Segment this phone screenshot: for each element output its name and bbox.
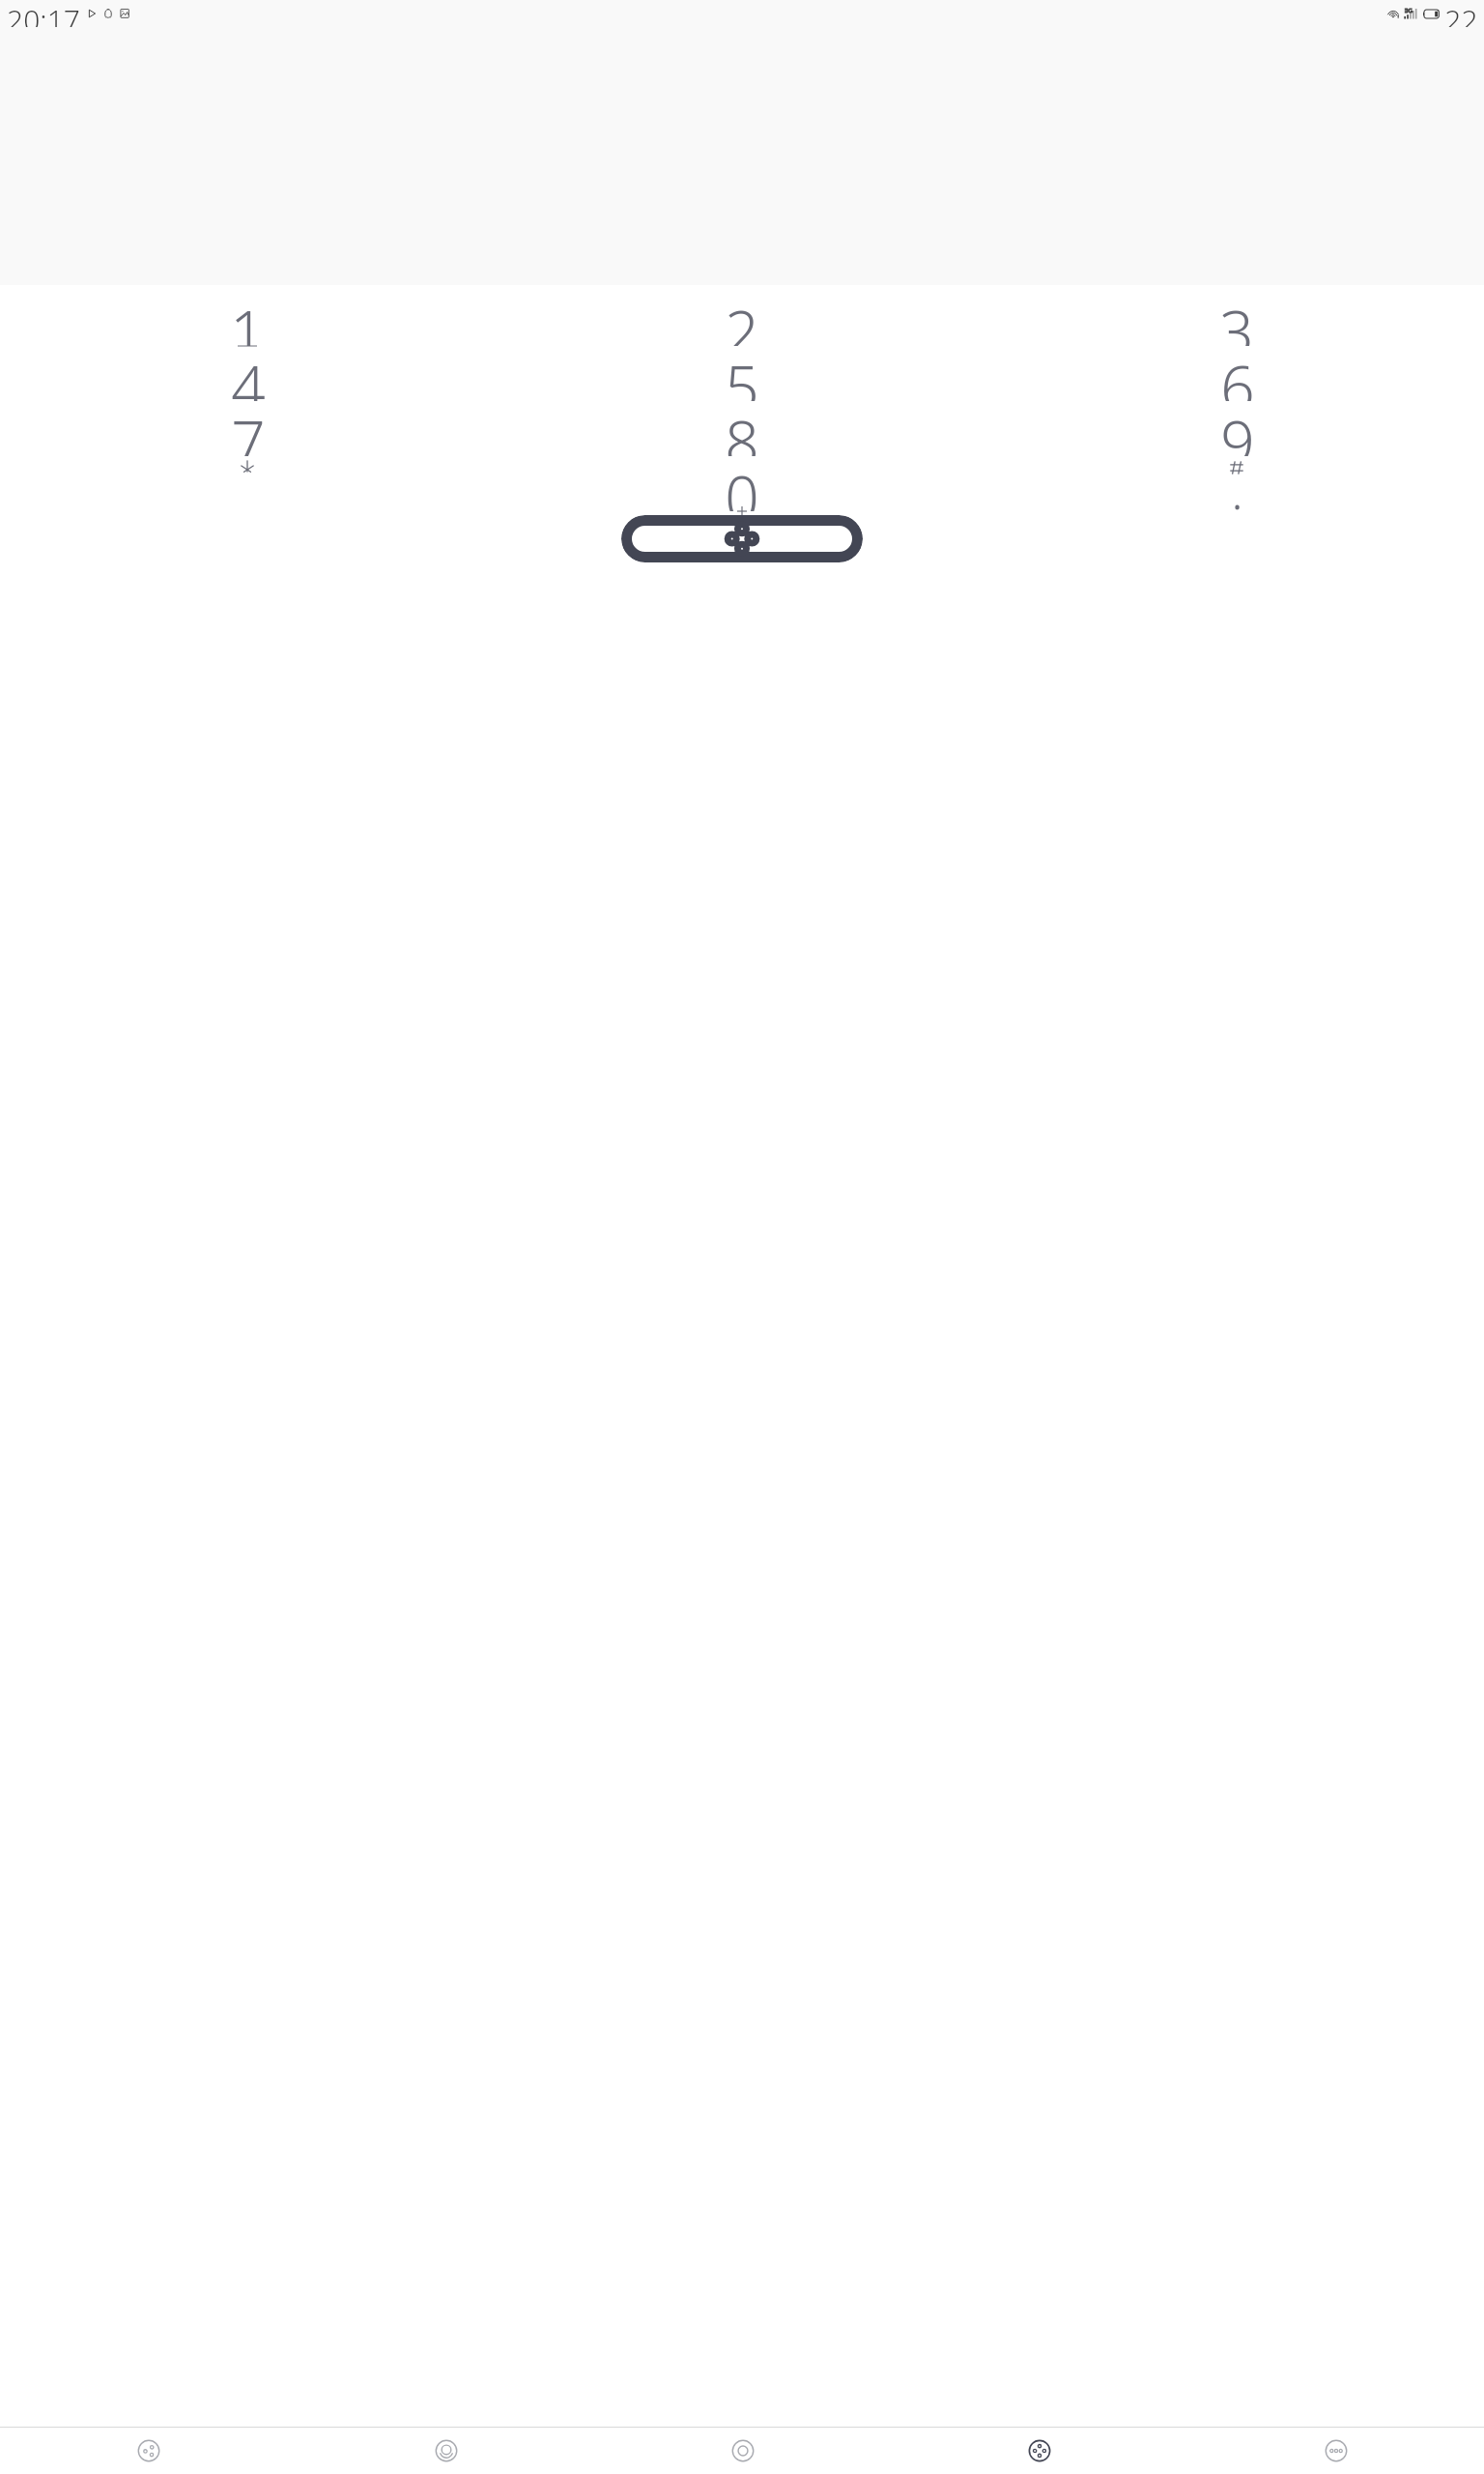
staticText: 3 — [1219, 291, 1254, 346]
button[interactable]: 6 — [989, 347, 1484, 402]
button[interactable]: Recent calls — [0, 2428, 298, 2474]
staticText: 7 — [231, 401, 266, 456]
button[interactable]: 4 — [0, 347, 495, 402]
staticText: 4 — [231, 346, 266, 401]
button[interactable]: 3 — [989, 292, 1484, 347]
button[interactable]: Dialpad — [891, 2428, 1187, 2474]
button[interactable]: Contacts — [298, 2428, 594, 2474]
staticText: 0 — [725, 456, 759, 511]
button[interactable]: Favourites — [594, 2428, 891, 2474]
staticText: ; — [1231, 480, 1243, 511]
staticText: 2 — [725, 291, 759, 346]
button[interactable]: 1 — [0, 292, 495, 347]
button[interactable]: 5 — [495, 347, 989, 402]
staticText: 5 — [725, 346, 759, 401]
staticText: 6 — [1220, 346, 1255, 401]
button[interactable]: More — [1187, 2428, 1484, 2474]
staticText: 20:17 — [7, 0, 80, 27]
button[interactable]: 7 — [0, 402, 495, 457]
button[interactable]: 2 — [495, 292, 989, 347]
staticText: 8 — [725, 401, 759, 456]
button[interactable]: 8 — [495, 402, 989, 457]
button[interactable]: ; — [989, 457, 1484, 512]
button[interactable]: 0 — [495, 457, 989, 512]
button[interactable]: Call — [621, 515, 863, 562]
staticText: 1 — [230, 291, 265, 346]
staticText: 22 — [1444, 0, 1478, 27]
button[interactable]: 9 — [989, 402, 1484, 457]
staticText: 9 — [1220, 401, 1255, 456]
button[interactable]: , — [0, 457, 495, 512]
